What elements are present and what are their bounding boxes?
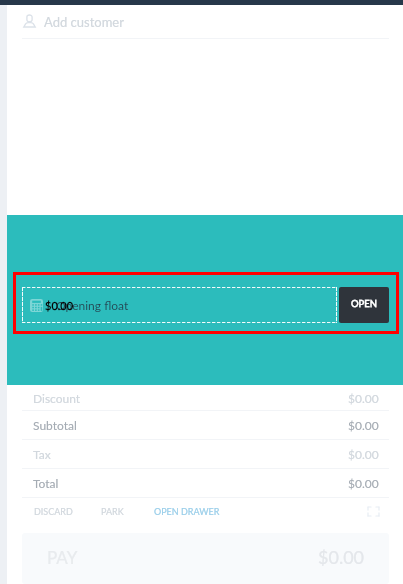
staticText: PAY [47, 547, 78, 567]
button[interactable]: Fullscreen [366, 504, 380, 518]
staticText: Add customer [44, 14, 124, 30]
staticText: OPEN [351, 298, 378, 309]
staticText: Opening float [56, 298, 129, 312]
staticText: Total [33, 476, 59, 490]
staticText: DISCARD [34, 506, 73, 517]
staticText: $0.00 [348, 447, 379, 461]
button[interactable]: OPEN [339, 287, 389, 323]
staticText: $0.00 [318, 546, 365, 568]
button[interactable]: Total [7, 469, 403, 497]
staticText: Subtotal [33, 418, 77, 432]
staticText: $0.00 [348, 391, 379, 405]
button[interactable]: DISCARD [34, 506, 73, 517]
staticText: OPEN DRAWER [154, 506, 220, 517]
button[interactable]: OPEN DRAWER [154, 506, 220, 517]
staticText: PARK [101, 506, 124, 517]
staticText: $0.00 [348, 476, 379, 490]
button[interactable]: Subtotal [7, 411, 403, 439]
button[interactable]: Tax [7, 440, 403, 468]
button[interactable]: Opening float [22, 287, 337, 323]
button[interactable]: Discount [7, 385, 403, 410]
staticText: $0.00 [348, 418, 379, 432]
staticText: Tax [33, 447, 51, 461]
button[interactable]: PARK [101, 506, 124, 517]
button[interactable]: Add customer [7, 5, 403, 38]
staticText: Discount [33, 391, 81, 405]
staticText: $0.00 [45, 299, 74, 312]
